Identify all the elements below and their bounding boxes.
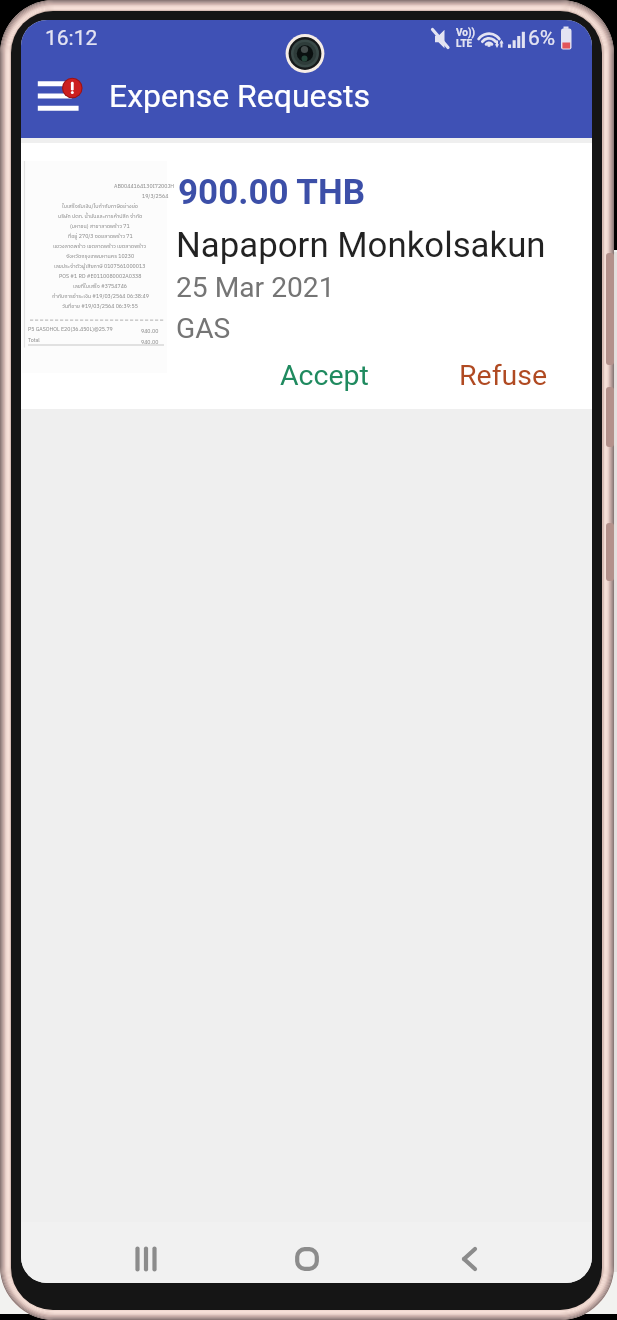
staticText: เลขประจำตัวผู้เสียภาษี 0107561000013 [54,262,146,271]
staticText: 940.00 [141,338,159,347]
staticText: Total [28,336,40,345]
staticText: วันที่ขาย #19/03/2564 06:39:55 [62,302,138,311]
staticText: Napaporn Monkolsakun [176,225,546,266]
staticText: Expense Requests [109,77,371,115]
staticText: จังหวัดกรุงเทพมหานคร 10230 [66,252,135,261]
staticText: Vo)) [456,27,476,39]
staticText: (มหาชน) สาขาลาดพร้าว 71 [70,222,130,231]
staticText: 16:12 [45,26,98,51]
staticText: 6% [528,26,556,51]
staticText: P5 GASOHOL E20(36.450L)@25.79 [28,325,113,334]
staticText: GAS [176,312,231,345]
staticText: 940.00 [141,327,159,336]
staticText: บริษัท ปตท. น้ำมันและการค้าปลีก จำกัด [58,212,143,221]
staticText: 19/3/2564 [142,192,169,201]
staticText: ที่อยู่ 270/3 ซอยลาดพร้าว 71 [68,232,133,241]
staticText: ใบเสร็จรับเงิน/ใบกำกับภาษีอย่างย่อ [62,202,138,211]
staticText: 25 Mar 2021 [176,271,335,304]
button[interactable]: Refuse [439,349,568,402]
staticText: LTE [456,38,473,50]
button[interactable]: Open navigation drawer [32,59,94,121]
staticText: กำกับการชำระเงิน #19/03/2564 06:38:49 [52,292,149,301]
staticText: Refuse [459,359,548,392]
staticText: 900.00 THB [178,172,366,213]
staticText: AB0044164130I7200JH [114,182,174,191]
button[interactable]: Accept [260,349,389,402]
button[interactable]: AB0044164130I7200JH [21,143,592,409]
staticText: Accept [280,359,369,392]
button[interactable]: Home [279,1231,335,1283]
staticText: แขวงลาดพร้าว เขตลาดพร้าว เขตลาดพร้าว [53,242,147,251]
staticText: POS #1 RD #E0110080002A0338 [59,272,142,281]
staticText: เลขที่ใบเสร็จ #3754746 [73,282,127,291]
button[interactable]: Recent apps [118,1231,174,1283]
button[interactable]: Back [443,1231,499,1283]
